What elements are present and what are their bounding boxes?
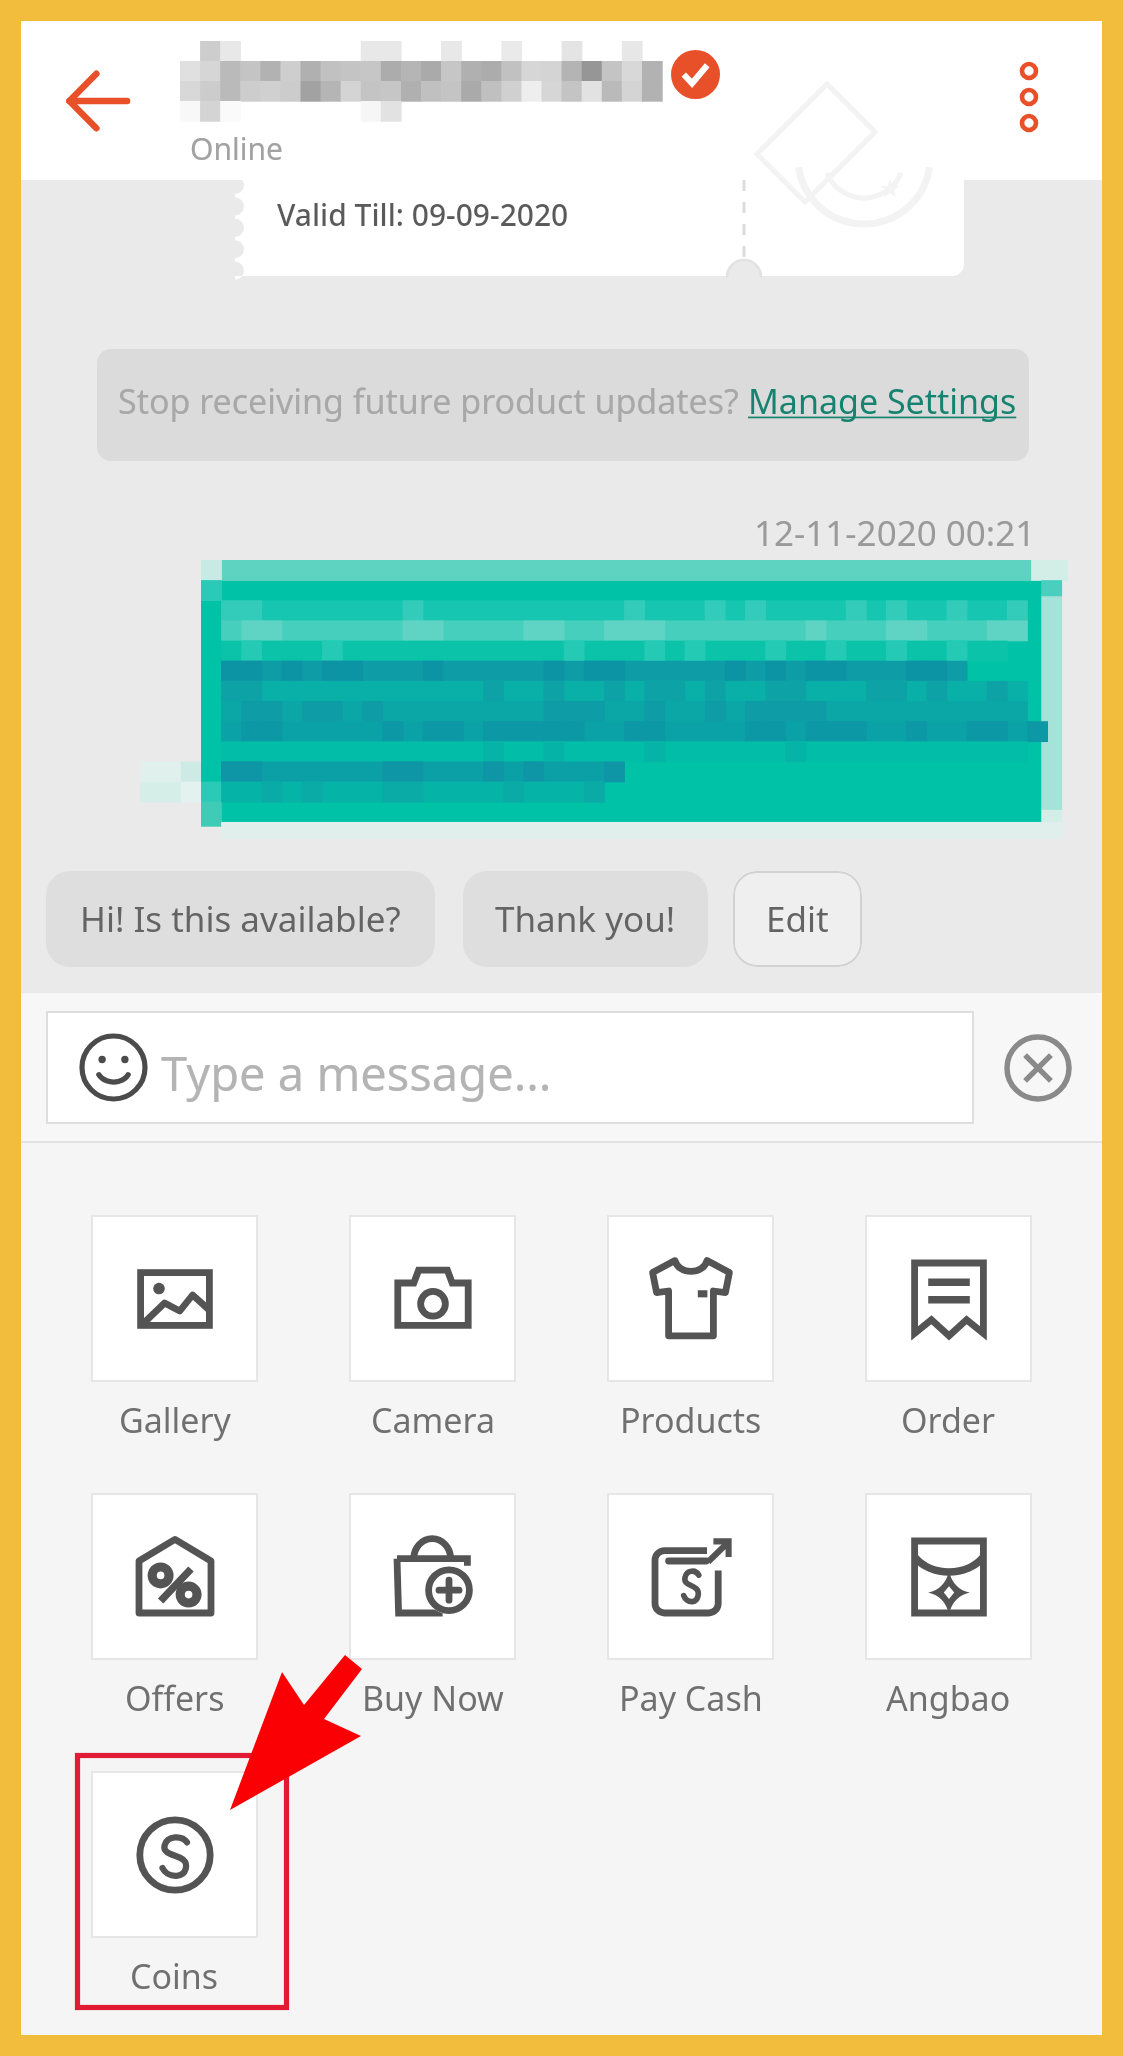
button[interactable]: Stop receiving future product updates? xyxy=(97,349,1029,461)
staticText: Camera xyxy=(371,1397,495,1443)
staticText: Order xyxy=(901,1397,996,1443)
button[interactable]: Order xyxy=(865,1215,1032,1443)
staticText: Type a message... xyxy=(161,1041,552,1105)
button[interactable]: Back xyxy=(51,55,143,147)
button[interactable]: Coins xyxy=(91,1771,258,1999)
button[interactable]: Angbao xyxy=(865,1493,1032,1721)
staticText: Pay Cash xyxy=(619,1675,763,1721)
staticText: Hi! Is this available? xyxy=(80,895,401,943)
button[interactable]: Edit xyxy=(733,871,862,967)
staticText: Products xyxy=(620,1397,762,1443)
button[interactable]: Pay Cash xyxy=(607,1493,774,1721)
button[interactable]: Type a message... xyxy=(46,1011,974,1124)
staticText: Edit xyxy=(766,895,829,943)
button[interactable]: More options xyxy=(984,37,1074,157)
staticText: Angbao xyxy=(886,1675,1011,1721)
staticText: Stop receiving future product updates? xyxy=(118,378,748,424)
button[interactable]: Products xyxy=(607,1215,774,1443)
staticText: Buy Now xyxy=(362,1675,504,1721)
button[interactable]: Buy Now xyxy=(349,1493,516,1721)
staticText: Online xyxy=(190,128,283,169)
staticText: Offers xyxy=(125,1675,225,1721)
button[interactable]: Gallery xyxy=(91,1215,258,1443)
button[interactable]: Camera xyxy=(349,1215,516,1443)
button[interactable]: Offers xyxy=(91,1493,258,1721)
staticText: Manage Settings xyxy=(748,378,1017,424)
staticText: Coins xyxy=(130,1953,219,1999)
staticText: Gallery xyxy=(119,1397,231,1443)
button[interactable]: Hi! Is this available? xyxy=(46,871,435,967)
staticText: 12-11-2020 00:21 xyxy=(754,509,1036,557)
staticText: Valid Till: 09-09-2020 xyxy=(277,194,569,235)
staticText: Thank you! xyxy=(495,895,676,943)
button[interactable]: Thank you! xyxy=(463,871,708,967)
button[interactable]: Close attachment panel xyxy=(992,1022,1084,1114)
